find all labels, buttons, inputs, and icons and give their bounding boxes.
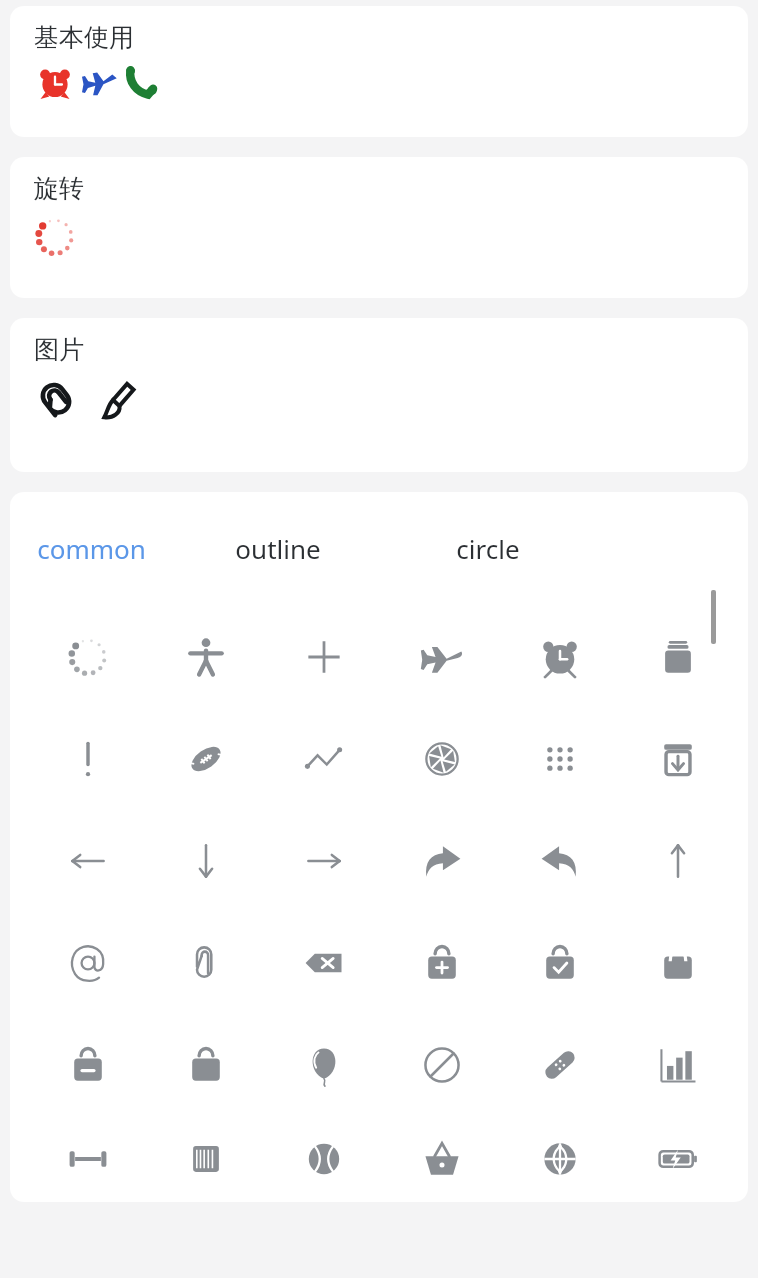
button[interactable]: icon [29, 1014, 147, 1116]
button[interactable]: icon [265, 1116, 383, 1202]
button[interactable]: icon [501, 1014, 619, 1116]
button[interactable]: icon [265, 810, 383, 912]
staticText: 图片 [34, 334, 84, 365]
button[interactable]: icon [147, 1116, 265, 1202]
button[interactable]: circle [383, 528, 593, 568]
button[interactable]: icon [147, 1014, 265, 1116]
button[interactable]: icon [619, 912, 737, 1014]
button[interactable]: icon [265, 606, 383, 708]
button[interactable]: outline [173, 528, 383, 568]
button[interactable]: icon [619, 810, 737, 912]
button[interactable]: icon [501, 606, 619, 708]
button[interactable]: icon [501, 1116, 619, 1202]
button[interactable]: icon [383, 912, 501, 1014]
button[interactable]: icon [29, 708, 147, 810]
button[interactable]: icon [29, 912, 147, 1014]
button[interactable]: icon [501, 708, 619, 810]
staticText: outline [235, 531, 321, 566]
button[interactable]: icon [29, 606, 147, 708]
button[interactable]: icon [265, 912, 383, 1014]
button[interactable]: icon [147, 708, 265, 810]
button[interactable]: common [10, 528, 173, 568]
button[interactable]: icon [265, 1014, 383, 1116]
button[interactable]: icon [501, 810, 619, 912]
button[interactable]: icon [619, 1014, 737, 1116]
button[interactable]: icon [501, 912, 619, 1014]
button[interactable]: icon [29, 810, 147, 912]
button[interactable]: icon [619, 708, 737, 810]
button[interactable]: 基本使用 [10, 6, 748, 137]
button[interactable]: icon [265, 708, 383, 810]
button[interactable]: icon [29, 1116, 147, 1202]
button[interactable]: icon [383, 810, 501, 912]
staticText: circle [456, 531, 520, 566]
button[interactable]: 旋转 [10, 157, 748, 298]
button[interactable]: icon [147, 912, 265, 1014]
staticText: common [37, 531, 146, 566]
button[interactable]: icon [383, 1116, 501, 1202]
button[interactable]: icon [619, 606, 737, 708]
button[interactable]: icon [619, 1116, 737, 1202]
button[interactable]: icon [383, 606, 501, 708]
staticText: 基本使用 [34, 22, 134, 53]
button[interactable]: icon [147, 606, 265, 708]
button[interactable]: 图片 [10, 318, 748, 472]
staticText: 旋转 [34, 173, 84, 204]
button[interactable]: icon [147, 810, 265, 912]
button[interactable]: icon [383, 1014, 501, 1116]
button[interactable]: icon [383, 708, 501, 810]
